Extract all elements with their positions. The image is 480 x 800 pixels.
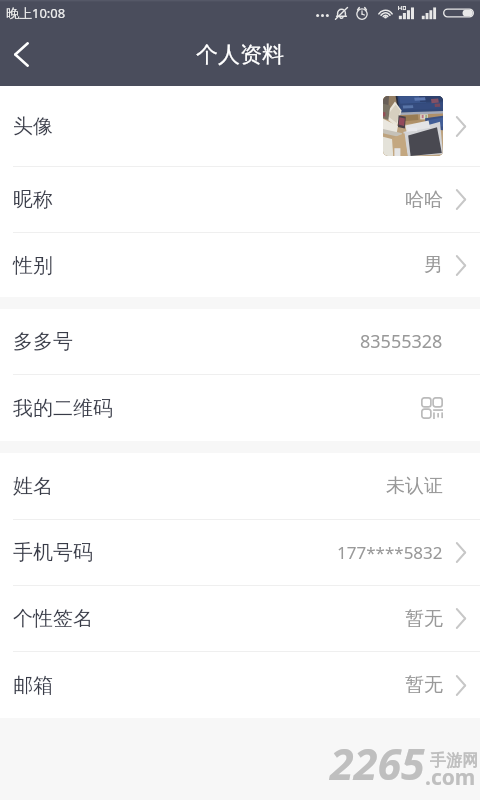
staticText: 我的二维码 <box>13 396 113 421</box>
staticText: .com <box>425 763 476 792</box>
staticText: 性别 <box>13 253 53 278</box>
staticText: 未认证 <box>386 474 443 498</box>
other: 我的二维码 <box>421 397 443 419</box>
button[interactable]: 多多号 <box>0 309 480 374</box>
button[interactable]: 手机号码 <box>0 520 480 585</box>
staticText: 哈哈 <box>405 188 443 212</box>
staticText: 手机号码 <box>13 540 93 565</box>
button[interactable]: 我的二维码 <box>0 375 480 441</box>
staticText: 177****5832 <box>337 541 443 564</box>
staticText: 暂无 <box>405 673 443 697</box>
button[interactable]: 邮箱 <box>0 652 480 718</box>
staticText: 昵称 <box>13 187 53 212</box>
staticText: 暂无 <box>405 607 443 631</box>
staticText: 邮箱 <box>13 673 53 698</box>
other: 头像 <box>383 96 443 156</box>
button[interactable]: 个性签名 <box>0 586 480 651</box>
staticText: 男 <box>424 253 443 277</box>
staticText: 个人资料 <box>196 41 284 69</box>
staticText: 个性签名 <box>13 606 93 631</box>
button[interactable]: 昵称 <box>0 167 480 232</box>
button[interactable]: 姓名 <box>0 453 480 519</box>
button[interactable]: Back <box>0 32 43 76</box>
staticText: 姓名 <box>13 474 53 499</box>
staticText: 2265 <box>330 734 425 793</box>
button[interactable]: 头像 <box>0 86 480 166</box>
staticText: 头像 <box>13 114 53 139</box>
staticText: 晚上10:08 <box>6 4 66 22</box>
staticText: 手游网 <box>430 751 478 771</box>
staticText: 多多号 <box>13 329 73 354</box>
button[interactable]: 性别 <box>0 233 480 297</box>
staticText: 83555328 <box>360 329 443 354</box>
